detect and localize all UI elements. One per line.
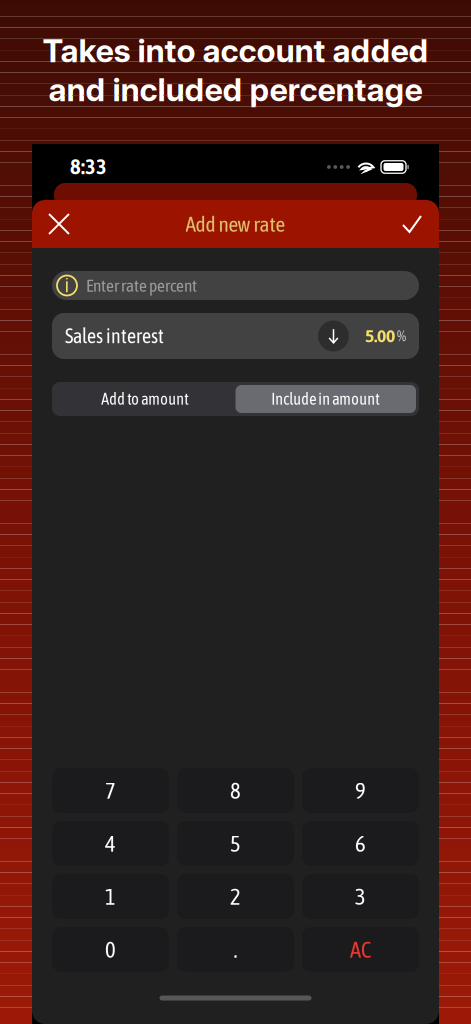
staticText: Add to amount (101, 390, 189, 408)
button[interactable]: 3 (302, 874, 419, 919)
button[interactable]: 9 (302, 768, 419, 813)
button[interactable]: 0 (52, 927, 169, 972)
staticText: 1 (105, 883, 116, 909)
staticText: Enter rate percent (86, 276, 197, 295)
staticText: 9 (355, 777, 366, 803)
button[interactable]: 2 (177, 874, 294, 919)
staticText: 3 (355, 883, 366, 909)
button[interactable]: 6 (302, 821, 419, 866)
staticText: 6 (355, 830, 366, 856)
button[interactable]: Close (32, 200, 86, 248)
staticText: 4 (105, 830, 116, 856)
staticText: 2 (230, 883, 241, 909)
button[interactable]: 1 (52, 874, 169, 919)
staticText: . (233, 936, 237, 962)
staticText: 8 (230, 777, 241, 803)
staticText: 5.00 (365, 326, 395, 346)
staticText: Takes into account added (42, 31, 428, 70)
staticText: 5 (230, 830, 241, 856)
staticText: % (397, 328, 406, 344)
button[interactable]: Done (385, 200, 439, 248)
button[interactable]: Add to amount (55, 385, 235, 413)
button[interactable]: Decrease (318, 320, 349, 351)
staticText: AC (350, 936, 371, 962)
staticText: Add new rate (185, 212, 285, 236)
button[interactable]: 5 (177, 821, 294, 866)
button[interactable]: 8 (177, 768, 294, 813)
staticText: and included percentage (48, 70, 422, 109)
staticText: 0 (105, 936, 116, 962)
staticText: 7 (105, 777, 116, 803)
staticText: Sales interest (65, 324, 164, 347)
staticText: 8:33 (70, 155, 107, 178)
button[interactable]: AC (302, 927, 419, 972)
staticText: i (64, 273, 69, 296)
button[interactable]: Include in amount (235, 385, 416, 413)
button[interactable]: . (177, 927, 294, 972)
button[interactable]: 4 (52, 821, 169, 866)
button[interactable]: 7 (52, 768, 169, 813)
staticText: Include in amount (271, 390, 380, 408)
